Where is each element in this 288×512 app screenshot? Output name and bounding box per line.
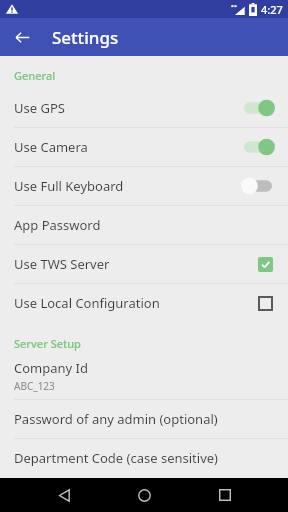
button[interactable]: Use GPS xyxy=(0,89,288,127)
staticText: Password of any admin (optional) xyxy=(14,410,218,428)
button[interactable]: Use Camera xyxy=(0,128,288,166)
button[interactable]: Use TWS Server xyxy=(0,245,288,283)
staticText: Server Setup xyxy=(14,336,81,351)
staticText: App Password xyxy=(14,216,101,234)
staticText: Use TWS Server xyxy=(14,255,110,273)
button[interactable]: Recent apps xyxy=(208,478,242,512)
staticText: Use Camera xyxy=(14,138,88,156)
button[interactable]: Back xyxy=(47,478,81,512)
button[interactable]: Company Id xyxy=(0,353,288,399)
staticText: Settings xyxy=(52,26,119,49)
button[interactable]: Back xyxy=(6,21,38,53)
staticText: General xyxy=(14,68,56,83)
staticText: 4:27 xyxy=(261,2,283,17)
button[interactable]: Use Local Configuration xyxy=(0,284,288,322)
button[interactable]: Department Code (case sensitive) xyxy=(0,439,288,477)
button[interactable]: Use Full Keyboard xyxy=(0,167,288,205)
button[interactable]: Password of any admin (optional) xyxy=(0,400,288,438)
button[interactable]: Home xyxy=(127,478,161,512)
staticText: Use Full Keyboard xyxy=(14,177,124,195)
staticText: Company Id xyxy=(14,359,88,377)
button[interactable]: App Password xyxy=(0,206,288,244)
staticText: Use Local Configuration xyxy=(14,294,160,312)
staticText: ABC_123 xyxy=(14,379,55,393)
staticText: Use GPS xyxy=(14,99,65,117)
staticText: Department Code (case sensitive) xyxy=(14,449,218,467)
